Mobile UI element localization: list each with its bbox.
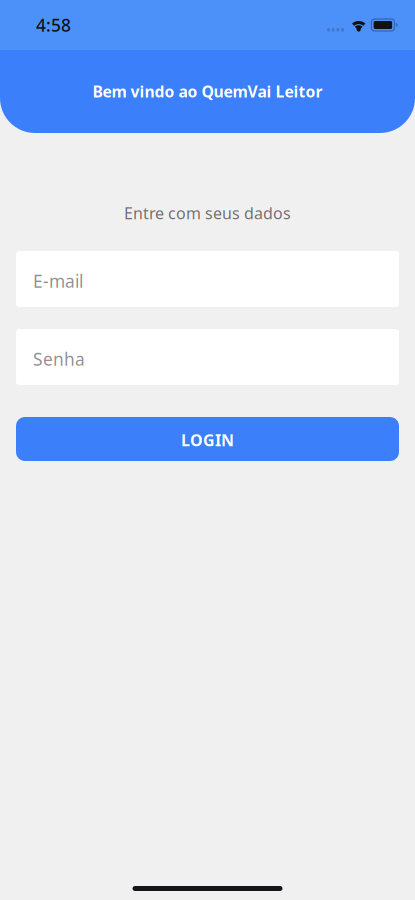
staticText: E-mail xyxy=(33,269,83,292)
staticText: 4:58 xyxy=(36,13,71,36)
staticText: LOGIN xyxy=(181,429,234,451)
staticText: Entre com seus dados xyxy=(124,202,291,224)
button[interactable]: LOGIN xyxy=(16,417,399,461)
staticText: Senha xyxy=(33,347,85,370)
button[interactable]: Senha xyxy=(16,329,399,385)
button[interactable]: E-mail xyxy=(16,251,399,307)
staticText: Bem vindo ao QuemVai Leitor xyxy=(92,81,322,102)
